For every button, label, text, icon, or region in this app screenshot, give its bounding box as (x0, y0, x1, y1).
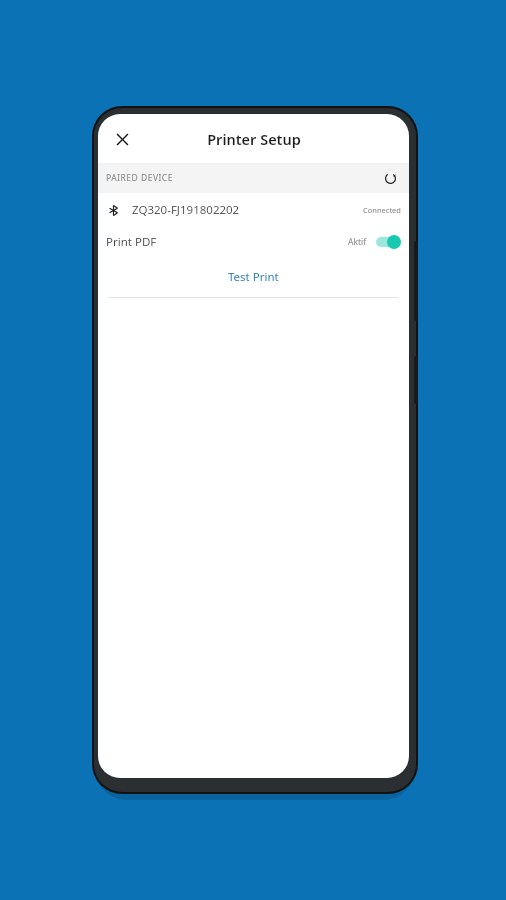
staticText: PAIRED DEVICE (106, 172, 173, 184)
staticText: ZQ320-FJ191802202 (132, 202, 240, 218)
button[interactable]: Close (103, 120, 141, 158)
staticText: Print PDF (106, 234, 157, 250)
staticText: Connected (363, 205, 401, 215)
button[interactable]: Print PDF enabled (375, 234, 401, 250)
button[interactable]: Test Print (98, 257, 409, 297)
button[interactable]: ZQ320-FJ191802202 (98, 193, 409, 226)
staticText: Printer Setup (207, 129, 301, 149)
button[interactable]: Print PDF (98, 226, 409, 257)
staticText: Aktif (348, 236, 367, 248)
button[interactable]: Refresh (377, 165, 403, 191)
staticText: Test Print (228, 269, 279, 285)
